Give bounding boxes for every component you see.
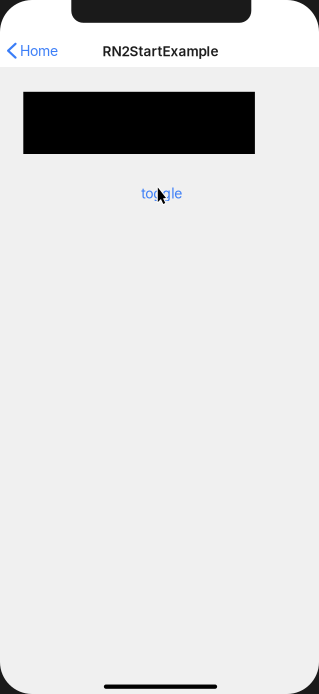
- staticText: Home: [20, 42, 58, 59]
- button[interactable]: toggle: [0, 154, 319, 202]
- button[interactable]: Home: [0, 33, 66, 67]
- staticText: RN2StartExample: [103, 43, 219, 60]
- staticText: toggle: [141, 185, 182, 202]
